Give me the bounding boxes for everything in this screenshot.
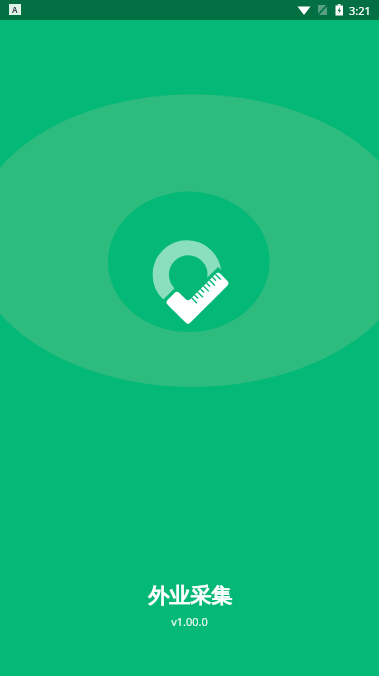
staticText: A <box>12 4 18 15</box>
staticText: 外业采集 <box>148 583 232 609</box>
staticText: 3:21 <box>349 3 371 18</box>
staticText: v1.00.0 <box>171 614 208 629</box>
